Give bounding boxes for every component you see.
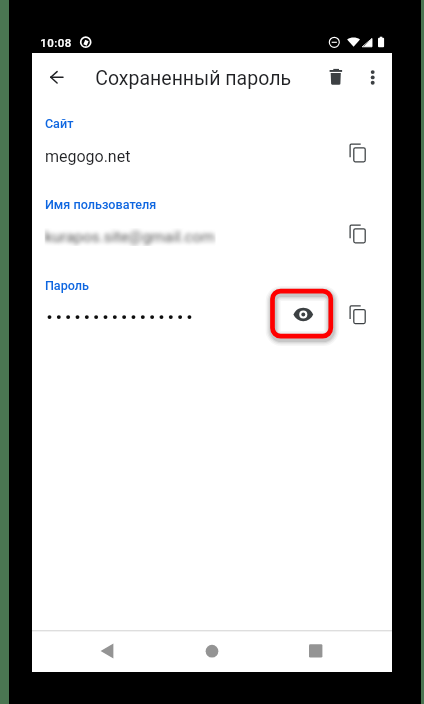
staticText: 10:08 — [40, 36, 72, 49]
staticText: Пароль — [45, 278, 90, 293]
button[interactable]: Назад — [44, 65, 70, 91]
button[interactable]: Копировать — [343, 300, 371, 328]
staticText: megogo.net — [45, 147, 131, 166]
button[interactable]: Сохраненный пароль — [99, 61, 299, 93]
staticText: Сохраненный пароль — [95, 67, 291, 90]
button[interactable]: Назад — [87, 632, 128, 672]
button[interactable]: Обзор — [295, 632, 336, 672]
button[interactable]: Главный экран — [192, 632, 233, 672]
button[interactable]: Копировать — [343, 220, 371, 248]
staticText: Имя пользователя — [45, 197, 157, 212]
button[interactable]: Ещё — [360, 64, 386, 90]
staticText: kurapos.site@gmail.com — [45, 228, 216, 246]
staticText: Сайт — [45, 116, 74, 131]
button[interactable]: Копировать — [343, 139, 371, 167]
button[interactable]: Показать пароль — [275, 293, 328, 335]
button[interactable]: Удалить — [323, 64, 349, 90]
